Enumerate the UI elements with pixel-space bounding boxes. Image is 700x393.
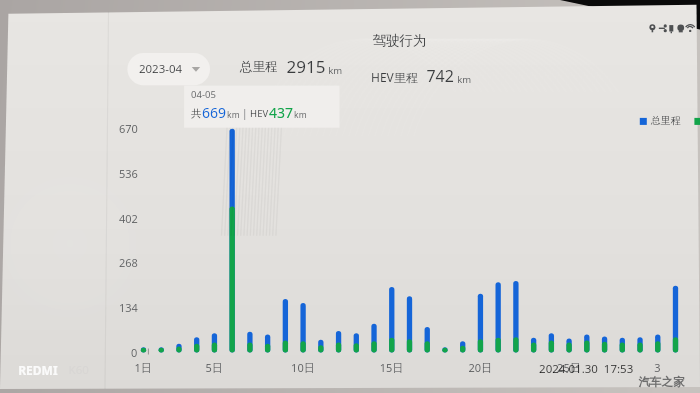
other: Status icons (0, 0, 64, 14)
button[interactable]: Driving behaviour chart (0, 0, 700, 393)
